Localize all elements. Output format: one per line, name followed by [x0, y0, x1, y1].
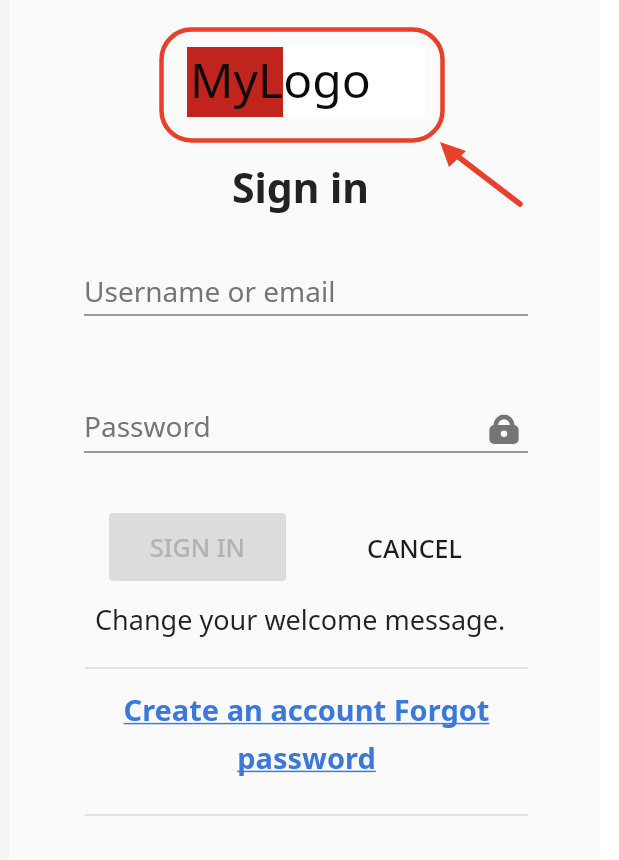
button[interactable]: Create an account Forgot password — [85, 690, 528, 777]
staticText: MyLogo — [190, 47, 371, 112]
button[interactable]: Username or email — [84, 272, 528, 314]
button[interactable]: SIGN IN — [109, 513, 286, 581]
button[interactable]: Password — [84, 407, 528, 451]
staticText: Sign in — [232, 159, 369, 215]
other: Show password — [483, 410, 525, 452]
staticText: CANCEL — [367, 531, 462, 565]
staticText: SIGN IN — [150, 530, 245, 564]
staticText: Change your welcome message. — [95, 601, 506, 638]
button[interactable]: CANCEL — [325, 513, 503, 582]
staticText: Password — [84, 407, 211, 445]
staticText: Username or email — [84, 272, 336, 310]
